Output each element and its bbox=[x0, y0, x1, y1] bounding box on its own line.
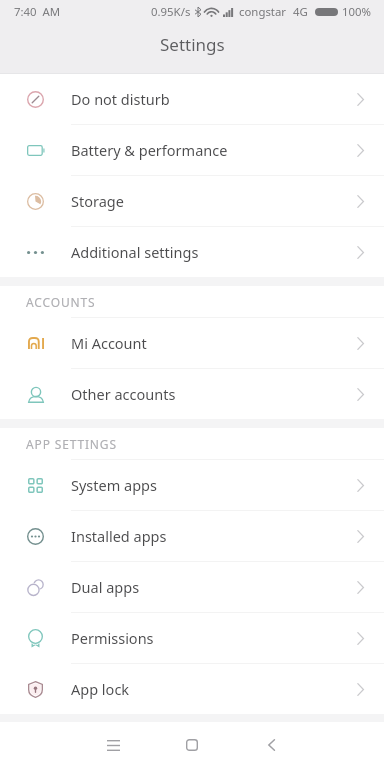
staticText: ACCOUNTS bbox=[26, 294, 96, 310]
button[interactable]: Do not disturb bbox=[0, 74, 384, 124]
button[interactable]: Recent apps bbox=[96, 728, 130, 762]
staticText: APP SETTINGS bbox=[26, 436, 117, 452]
staticText: Battery & performance bbox=[71, 140, 228, 160]
button[interactable]: Installed apps bbox=[0, 511, 384, 561]
staticText: congstar bbox=[239, 4, 287, 20]
button[interactable]: System apps bbox=[0, 460, 384, 510]
staticText: Additional settings bbox=[71, 242, 199, 262]
button[interactable]: Additional settings bbox=[0, 227, 384, 277]
staticText: Installed apps bbox=[71, 526, 167, 546]
button[interactable]: Home bbox=[175, 728, 209, 762]
button[interactable]: Storage bbox=[0, 176, 384, 226]
button[interactable]: Battery & performance bbox=[0, 125, 384, 175]
staticText: System apps bbox=[71, 475, 157, 495]
button[interactable]: Back bbox=[254, 728, 288, 762]
staticText: 7:40 AM bbox=[14, 4, 61, 20]
button[interactable]: App lock bbox=[0, 664, 384, 714]
button[interactable]: Permissions bbox=[0, 613, 384, 663]
staticText: Mi Account bbox=[71, 333, 147, 353]
staticText: 100% bbox=[342, 4, 372, 20]
staticText: Dual apps bbox=[71, 577, 140, 597]
staticText: Settings bbox=[160, 33, 225, 56]
staticText: 4G bbox=[293, 4, 308, 20]
staticText: 0.95K/s bbox=[151, 4, 191, 20]
staticText: App lock bbox=[71, 679, 130, 699]
button[interactable]: Dual apps bbox=[0, 562, 384, 612]
staticText: Permissions bbox=[71, 628, 154, 648]
staticText: Other accounts bbox=[71, 384, 176, 404]
staticText: Storage bbox=[71, 191, 124, 211]
button[interactable]: Other accounts bbox=[0, 369, 384, 419]
button[interactable]: Mi Account bbox=[0, 318, 384, 368]
staticText: Do not disturb bbox=[71, 89, 170, 109]
